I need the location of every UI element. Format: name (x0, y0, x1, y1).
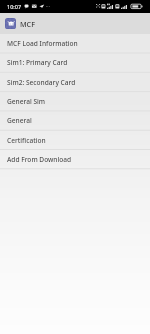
staticText: General Sim (7, 97, 46, 106)
staticText: General (7, 116, 32, 125)
button[interactable]: App icon (5, 18, 16, 29)
staticText: MCF (20, 19, 35, 29)
button[interactable]: General Sim (0, 92, 150, 111)
staticText: 10:07 (7, 3, 22, 10)
staticText: Sim2: Secondary Card (7, 78, 76, 87)
staticText: Add From Download (7, 155, 72, 164)
button[interactable]: Add From Download (0, 150, 150, 169)
staticText: MCF Load Information (7, 39, 78, 48)
button[interactable]: Sim1: Primary Card (0, 53, 150, 72)
button[interactable]: MCF Load Information (0, 34, 150, 53)
button[interactable]: Sim2: Secondary Card (0, 73, 150, 92)
staticText: Sim1: Primary Card (7, 58, 68, 67)
staticText: Certification (7, 136, 46, 145)
button[interactable]: Certification (0, 131, 150, 150)
button[interactable]: General (0, 111, 150, 130)
